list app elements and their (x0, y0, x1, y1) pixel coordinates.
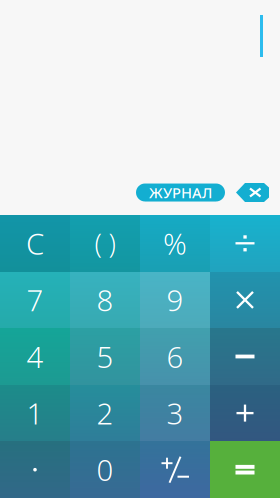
button[interactable]: 8 (70, 272, 140, 328)
staticText: 2 (96, 394, 113, 433)
button[interactable]: 2 (70, 385, 140, 441)
button[interactable]: Minus (210, 328, 280, 385)
staticText: ( ) (94, 226, 115, 261)
button[interactable]: % (140, 215, 210, 272)
button[interactable]: 7 (0, 272, 70, 328)
button[interactable]: 3 (140, 385, 210, 441)
button[interactable]: 6 (140, 328, 210, 385)
staticText: 8 (96, 280, 113, 319)
button[interactable]: ЖУРНАЛ (136, 183, 225, 201)
button[interactable]: 5 (70, 328, 140, 385)
button[interactable]: Plus (210, 385, 280, 441)
button[interactable]: Equals (210, 441, 280, 498)
staticText: % (163, 224, 187, 263)
button[interactable]: 0 (70, 441, 140, 498)
button[interactable]: Multiply (210, 272, 280, 328)
staticText: C (26, 224, 44, 263)
button[interactable]: Backspace (236, 183, 269, 202)
staticText: 6 (166, 337, 183, 376)
staticText: 5 (96, 337, 113, 376)
staticText: ЖУРНАЛ (149, 183, 212, 202)
staticText: 9 (166, 280, 183, 319)
staticText: 3 (166, 394, 183, 433)
staticText: 0 (96, 450, 113, 489)
staticText: 1 (26, 394, 43, 433)
button[interactable]: Parentheses (70, 215, 140, 272)
button[interactable]: Decimal point (0, 441, 70, 498)
button[interactable]: 9 (140, 272, 210, 328)
staticText: 7 (26, 280, 43, 319)
button[interactable]: Toggle sign (140, 441, 210, 498)
staticText: 4 (26, 337, 43, 376)
button[interactable]: C (0, 215, 70, 272)
button[interactable]: 4 (0, 328, 70, 385)
button[interactable]: Divide (210, 215, 280, 272)
button[interactable]: 1 (0, 385, 70, 441)
